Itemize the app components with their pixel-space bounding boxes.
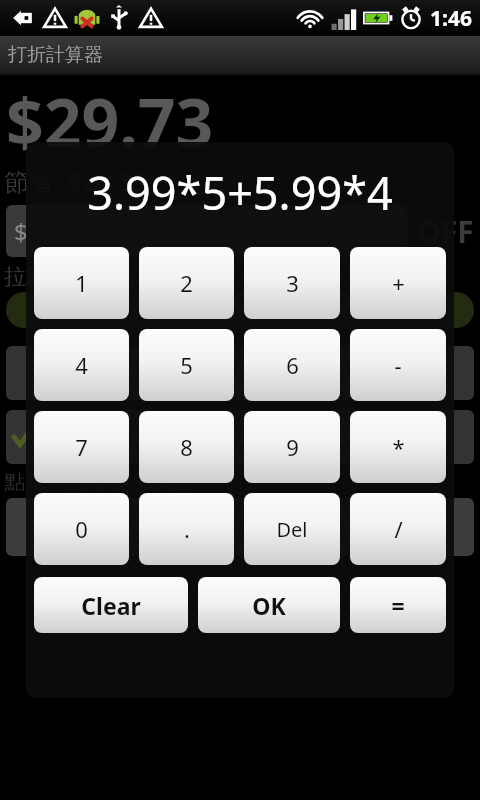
staticText: 5: [180, 350, 193, 380]
button[interactable]: 6: [244, 329, 340, 401]
button[interactable]: 0: [34, 493, 129, 565]
staticText: 3.99*5+5.99*4: [87, 162, 393, 223]
staticText: /: [394, 514, 403, 544]
button[interactable]: [172, 498, 333, 556]
staticText: OFF: [417, 211, 474, 252]
staticText: *: [392, 432, 405, 462]
staticText: 4: [75, 350, 88, 380]
staticText: 節省: $24.33: [4, 164, 146, 198]
button[interactable]: 3: [244, 247, 340, 319]
button[interactable]: 1: [34, 247, 129, 319]
staticText: $29.73: [6, 76, 214, 162]
button[interactable]: Del: [244, 493, 340, 565]
staticText: 6: [286, 350, 299, 380]
staticText: $: [14, 215, 28, 248]
button[interactable]: Clear: [34, 577, 188, 633]
staticText: 拉動調整折扣: [4, 263, 136, 291]
staticText: 2: [180, 268, 193, 298]
staticText: 點擊 + 計算多個商品: [4, 467, 195, 496]
staticText: 1:46: [430, 4, 472, 33]
staticText: .: [184, 514, 190, 544]
staticText: 打折計算器: [8, 43, 103, 67]
staticText: 0: [75, 514, 88, 544]
button[interactable]: .: [139, 493, 234, 565]
button[interactable]: [6, 346, 474, 400]
button[interactable]: OK: [198, 577, 340, 633]
button[interactable]: +: [350, 247, 446, 319]
button[interactable]: [337, 498, 474, 556]
staticText: 8: [180, 432, 193, 462]
staticText: Del: [276, 516, 308, 543]
button[interactable]: 7: [34, 411, 129, 483]
staticText: -: [394, 350, 402, 380]
button[interactable]: -: [350, 329, 446, 401]
button[interactable]: *: [350, 411, 446, 483]
staticText: =: [391, 590, 405, 621]
staticText: OK: [252, 590, 286, 621]
staticText: Clear: [81, 590, 141, 621]
staticText: +: [392, 268, 405, 298]
button[interactable]: [6, 498, 168, 556]
staticText: 7: [75, 432, 88, 462]
button[interactable]: $: [6, 205, 407, 257]
button[interactable]: [6, 410, 474, 464]
button[interactable]: =: [350, 577, 446, 633]
button[interactable]: /: [350, 493, 446, 565]
staticText: 9: [286, 432, 299, 462]
staticText: 3: [286, 268, 299, 298]
button[interactable]: 4: [34, 329, 129, 401]
button[interactable]: 2: [139, 247, 234, 319]
button[interactable]: 5: [139, 329, 234, 401]
button[interactable]: [6, 292, 474, 328]
button[interactable]: 9: [244, 411, 340, 483]
staticText: 1: [75, 268, 88, 298]
button[interactable]: 8: [139, 411, 234, 483]
